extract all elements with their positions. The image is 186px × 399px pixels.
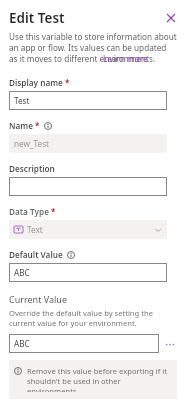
button[interactable]: ABC [9, 334, 159, 353]
staticText: Current Value [9, 293, 67, 305]
staticText: Data Type [9, 206, 49, 217]
staticText: Display name [9, 77, 63, 88]
staticText: * [35, 120, 40, 131]
staticText: Remove this value before exporting if it… [27, 366, 171, 392]
staticText: Override the default value by setting th… [9, 308, 177, 328]
staticText: * [65, 77, 70, 88]
button[interactable]: Learn more [103, 53, 148, 64]
staticText: ABC [14, 338, 154, 349]
button[interactable]: Test [9, 91, 167, 110]
staticText: ABC [14, 267, 162, 278]
button[interactable]: Close [162, 9, 180, 27]
staticText: Learn more [103, 53, 148, 64]
staticText: Test [14, 95, 162, 106]
button[interactable]: ABC [9, 263, 167, 282]
button[interactable]: new_Test [9, 134, 167, 153]
button[interactable]: Text [9, 220, 167, 239]
staticText: new_Test [14, 138, 162, 149]
staticText: Description [9, 163, 55, 174]
staticText: Edit Test [9, 9, 162, 27]
staticText: Text [27, 224, 154, 235]
staticText: Default Value [9, 249, 63, 260]
staticText: Name [9, 120, 33, 131]
button[interactable] [9, 177, 167, 196]
staticText: Use this variable to store information a… [9, 31, 177, 64]
staticText: * [51, 206, 56, 217]
button[interactable]: More options [163, 337, 177, 351]
